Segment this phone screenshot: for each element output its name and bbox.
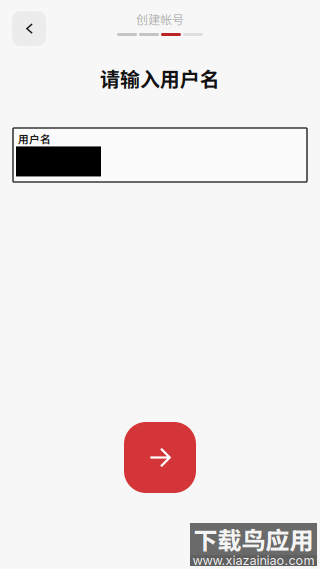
- staticText: www.xiazainiao.com: [192, 553, 314, 568]
- staticText: 用户名: [18, 131, 51, 146]
- button[interactable]: Next: [124, 422, 196, 493]
- staticText: 创建帐号: [136, 10, 184, 28]
- staticText: 下载鸟应用: [193, 522, 313, 556]
- staticText: 请输入用户名: [100, 63, 220, 92]
- button[interactable]: Back: [12, 11, 46, 46]
